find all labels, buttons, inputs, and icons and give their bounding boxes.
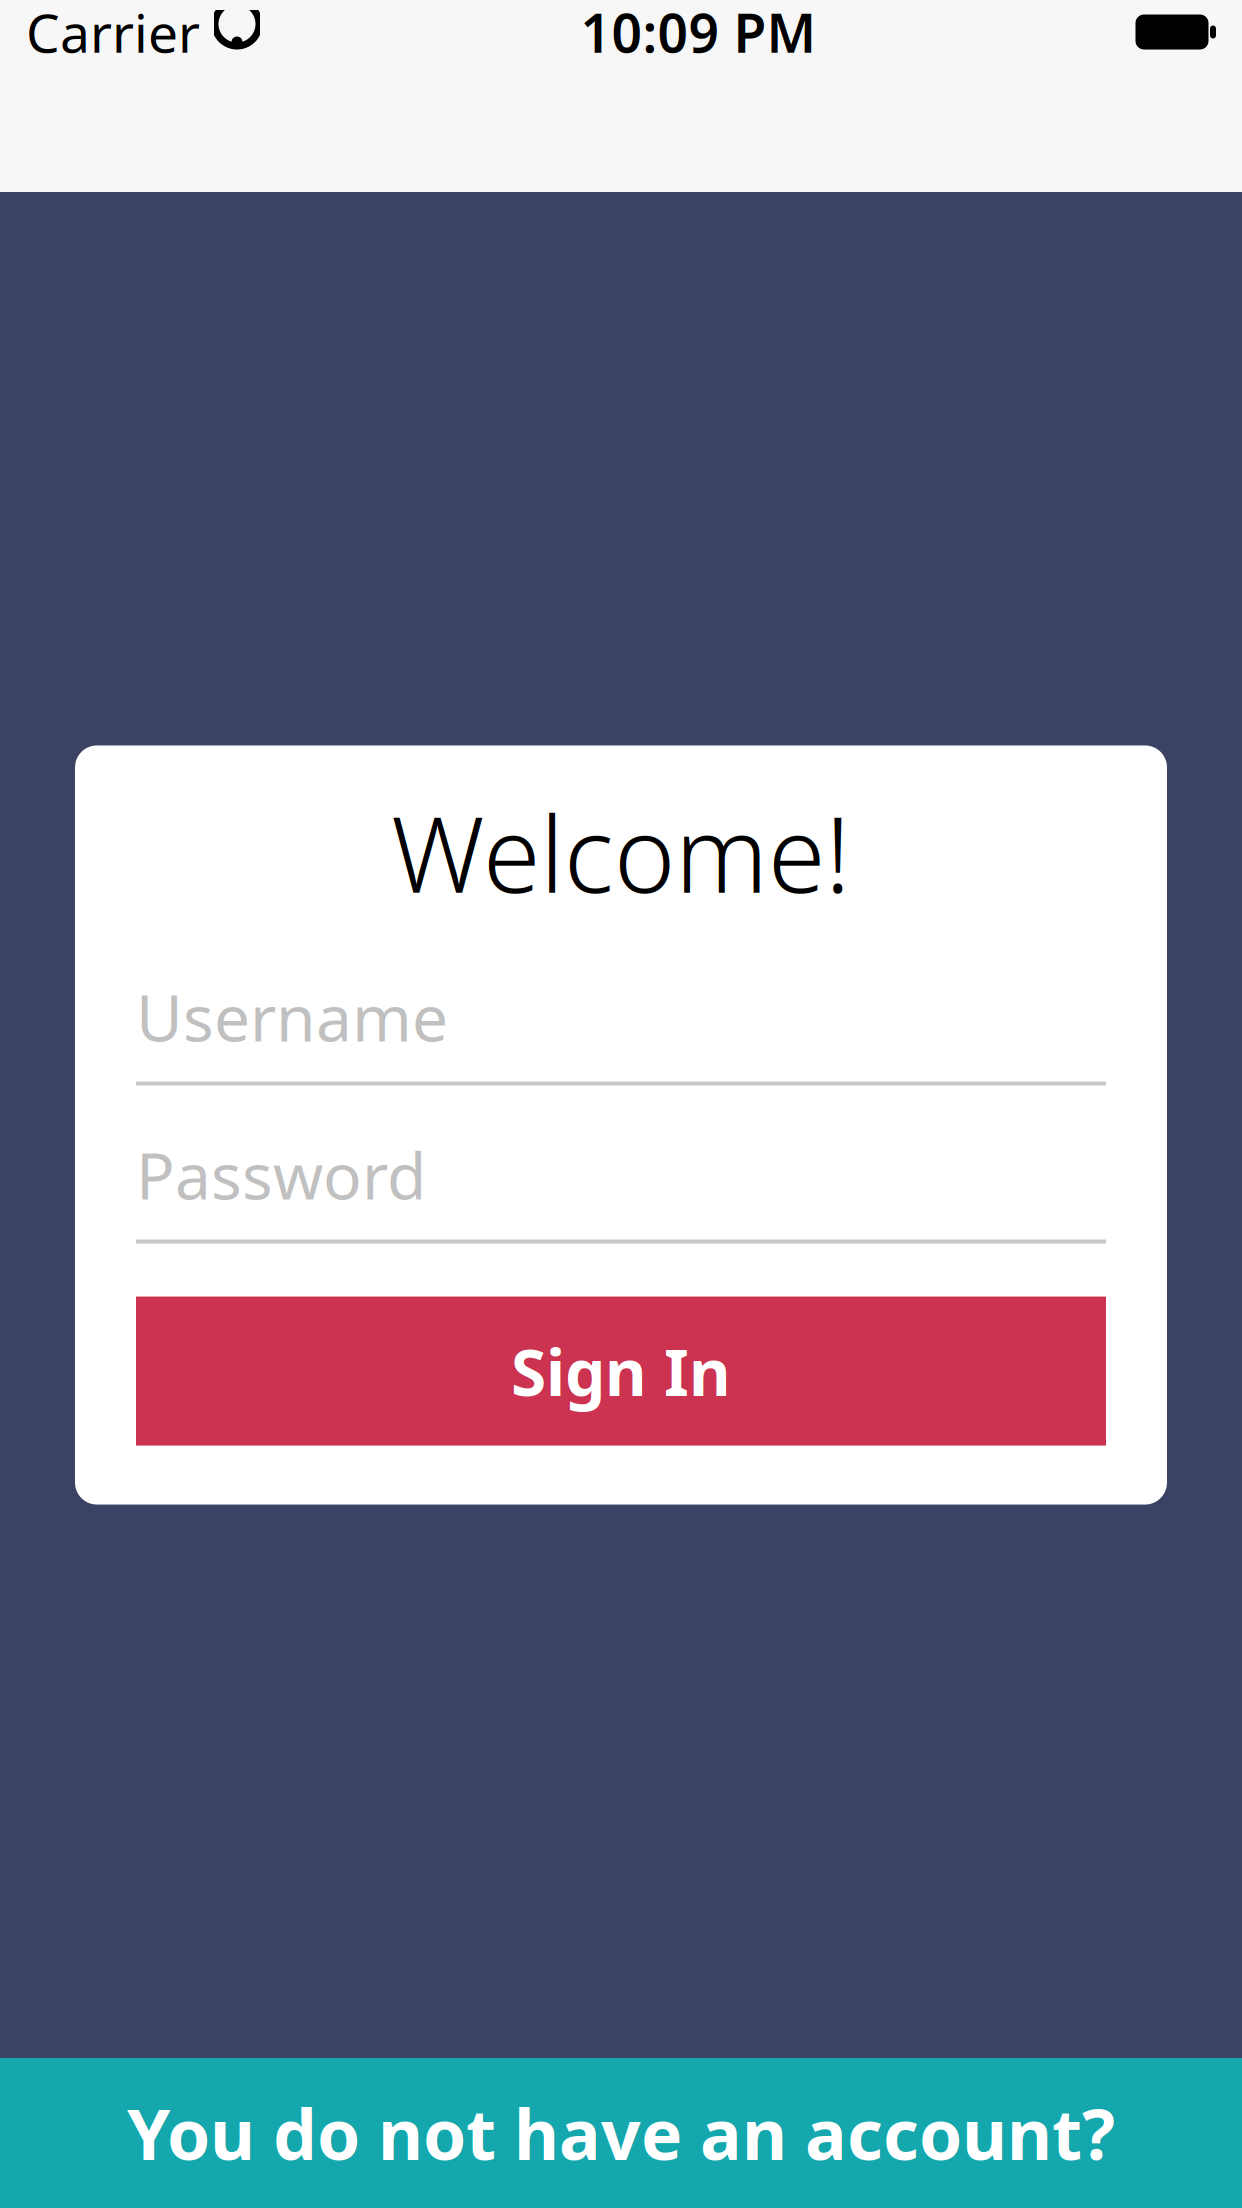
staticText: Password: [136, 1132, 426, 1217]
staticText: Username: [136, 974, 448, 1059]
button[interactable]: Sign In: [136, 1297, 1106, 1446]
staticText: 10:09 PM: [580, 0, 816, 67]
staticText: Welcome!: [391, 783, 851, 921]
staticText: Carrier: [26, 0, 200, 67]
button[interactable]: You do not have an account?: [0, 2058, 1242, 2208]
staticText: Sign In: [511, 1329, 731, 1414]
staticText: You do not have an account?: [127, 2087, 1115, 2179]
